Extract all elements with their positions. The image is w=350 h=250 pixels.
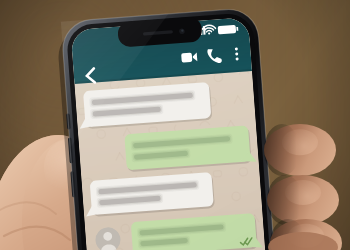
button[interactable]: Hand holding phone showing chat app: [0, 0, 350, 250]
